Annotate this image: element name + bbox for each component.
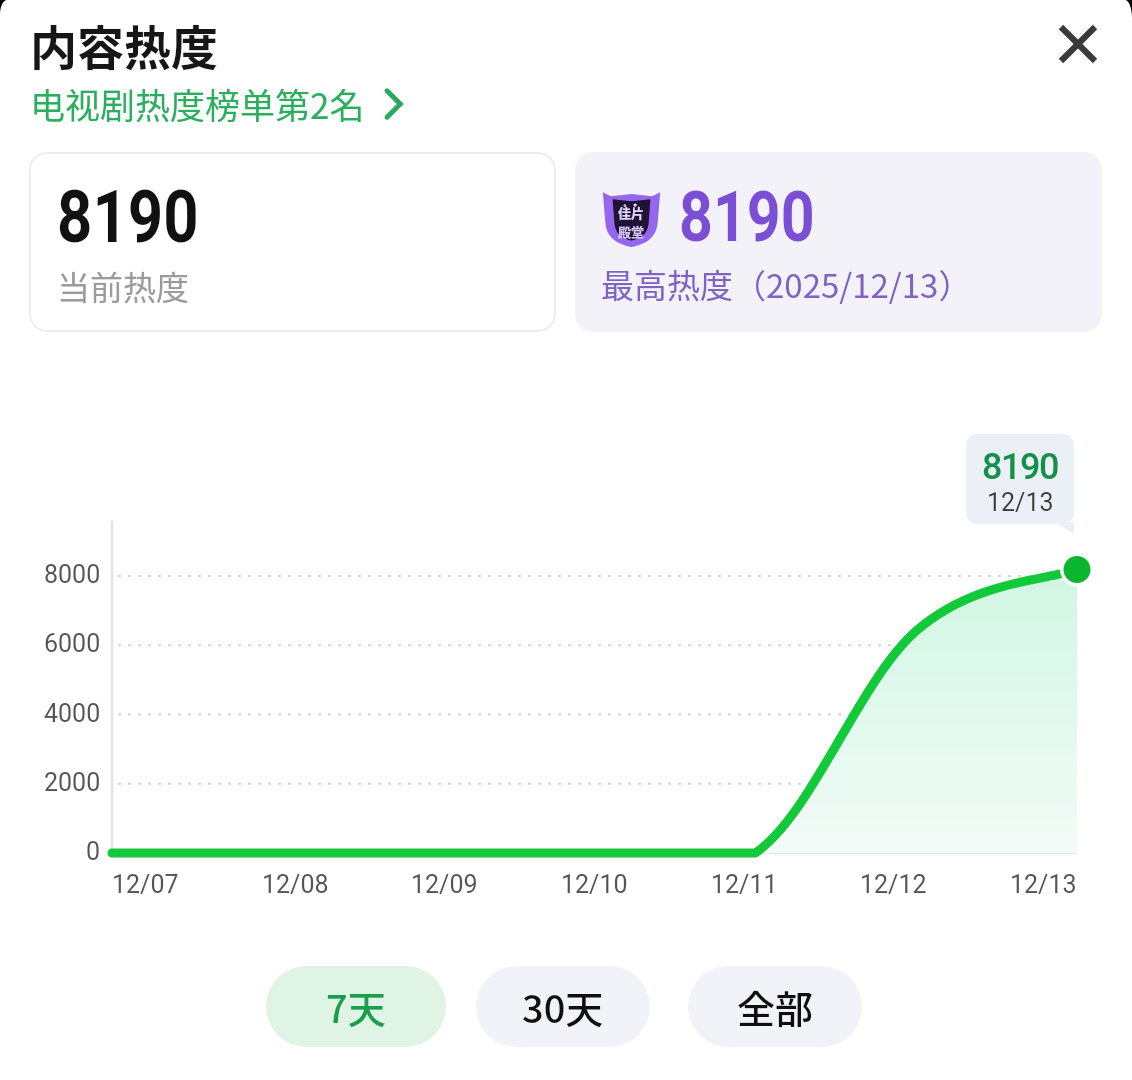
button[interactable]: 电视剧热度榜单第2名 bbox=[30, 78, 402, 129]
staticText: 4000 bbox=[44, 699, 101, 728]
staticText: 12/07 bbox=[112, 870, 179, 899]
staticText: 12/13 bbox=[1010, 870, 1077, 899]
staticText: 全部 bbox=[737, 979, 814, 1034]
staticText: 30天 bbox=[522, 979, 604, 1034]
staticText: 电视剧热度榜单第2名 bbox=[30, 78, 365, 129]
staticText: 8190 bbox=[679, 176, 815, 258]
staticText: 殿堂 bbox=[618, 222, 645, 241]
staticText: 8000 bbox=[44, 560, 101, 589]
staticText: 12/09 bbox=[411, 870, 478, 899]
staticText: 2000 bbox=[44, 768, 101, 797]
staticText: 佳片 bbox=[618, 203, 645, 222]
staticText: 当前热度 bbox=[57, 262, 189, 310]
staticText: 12/12 bbox=[860, 870, 927, 899]
staticText: 内容热度 bbox=[30, 10, 218, 78]
staticText: 12/08 bbox=[262, 870, 329, 899]
staticText: 8190 bbox=[57, 174, 199, 260]
button[interactable]: 佳片 bbox=[575, 152, 1102, 332]
button[interactable]: Close bbox=[1038, 4, 1118, 84]
button[interactable]: 30天 bbox=[476, 966, 650, 1047]
staticText: 0 bbox=[86, 837, 101, 866]
button[interactable]: 7天 bbox=[266, 966, 446, 1047]
button[interactable]: 全部 bbox=[688, 966, 862, 1047]
staticText: 7天 bbox=[326, 979, 386, 1034]
button[interactable]: 8190 bbox=[29, 152, 556, 332]
staticText: 6000 bbox=[44, 629, 101, 658]
staticText: 12/13 bbox=[987, 488, 1054, 517]
staticText: 8190 bbox=[982, 446, 1058, 488]
staticText: 最高热度（2025/12/13） bbox=[601, 260, 972, 308]
staticText: 12/10 bbox=[561, 870, 628, 899]
staticText: 12/11 bbox=[711, 870, 778, 899]
